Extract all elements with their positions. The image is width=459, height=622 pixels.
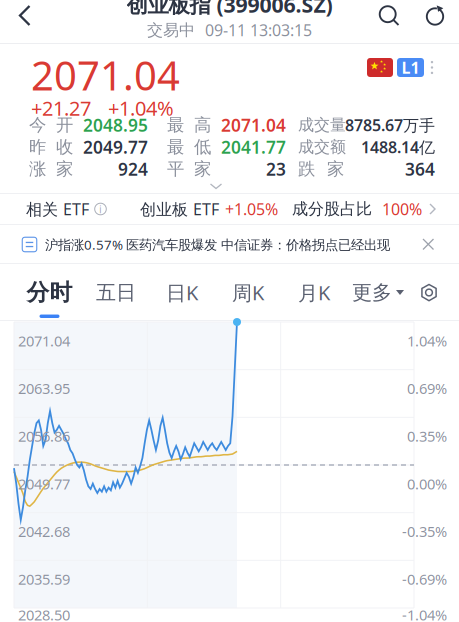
- staticText: 0.35%: [407, 426, 447, 446]
- staticText: 交易中: [147, 20, 195, 40]
- button[interactable]: Search: [367, 0, 411, 44]
- staticText: 2028.50: [18, 605, 70, 622]
- staticText: 最: [167, 114, 184, 136]
- staticText: 2035.59: [18, 569, 70, 589]
- staticText: 100%: [382, 198, 422, 220]
- button[interactable]: 日K: [149, 264, 215, 321]
- button[interactable]: 分时: [16, 264, 83, 321]
- staticText: 364: [405, 157, 435, 180]
- staticText: 最: [167, 136, 184, 158]
- staticText: 创业板指 (399006.SZ): [126, 0, 332, 18]
- button[interactable]: 相关 ETF: [0, 193, 459, 225]
- staticText: 2071.04: [221, 113, 286, 136]
- staticText: 分时: [26, 279, 72, 306]
- staticText: 沪指涨0.57% 医药汽车股爆发 中信证券：价格拐点已经出现: [45, 236, 390, 253]
- staticText: 2071.04: [18, 331, 70, 350]
- staticText: -1.04%: [402, 605, 447, 622]
- staticText: 开: [56, 114, 73, 136]
- staticText: i: [99, 202, 102, 216]
- staticText: 周K: [232, 279, 264, 306]
- button[interactable]: 沪指涨0.57% 医药汽车股爆发 中信证券：价格拐点已经出现: [0, 225, 459, 264]
- button[interactable]: 月K: [281, 264, 347, 321]
- staticText: 日K: [166, 279, 198, 306]
- staticText: 家: [194, 158, 211, 180]
- staticText: 高: [194, 114, 211, 136]
- button[interactable]: 五日: [83, 264, 149, 321]
- staticText: 924: [118, 157, 148, 180]
- staticText: +1.05%: [225, 198, 278, 220]
- staticText: 0.69%: [407, 379, 447, 398]
- staticText: 2049.77: [18, 474, 70, 493]
- staticText: 8785.67万手: [345, 114, 435, 136]
- staticText: 2048.95: [83, 113, 148, 136]
- staticText: 月K: [298, 279, 330, 306]
- staticText: -0.35%: [402, 522, 447, 541]
- staticText: 0.00%: [407, 474, 447, 493]
- staticText: 2063.95: [18, 379, 70, 398]
- staticText: 跌: [298, 158, 315, 180]
- staticText: 相关 ETF: [26, 198, 89, 220]
- staticText: 五日: [96, 280, 136, 305]
- staticText: 成分股占比: [292, 199, 372, 219]
- staticText: 成交额: [298, 137, 346, 157]
- staticText: 家: [56, 158, 73, 180]
- staticText: -0.69%: [402, 569, 447, 589]
- staticText: 创业板 ETF: [140, 198, 219, 220]
- staticText: 2071.04: [31, 48, 180, 101]
- staticText: L1: [401, 57, 419, 78]
- staticText: 更多: [352, 280, 392, 305]
- staticText: 09-11 13:03:15: [205, 19, 312, 41]
- staticText: 2049.77: [83, 135, 148, 158]
- staticText: 1.04%: [407, 331, 447, 350]
- staticText: 低: [194, 136, 211, 158]
- staticText: 收: [56, 136, 73, 158]
- button[interactable]: Chart settings: [409, 264, 449, 321]
- staticText: 家: [327, 158, 344, 180]
- button[interactable]: Refresh: [411, 0, 459, 44]
- staticText: 平: [167, 158, 184, 180]
- staticText: 成交量: [298, 115, 346, 135]
- button[interactable]: 周K: [215, 264, 281, 321]
- staticText: 涨: [29, 158, 46, 180]
- staticText: 1488.14亿: [361, 136, 435, 158]
- staticText: +21.27: [31, 95, 91, 121]
- staticText: 2041.77: [221, 135, 286, 158]
- staticText: 23: [266, 157, 286, 180]
- staticText: 15:00: [410, 617, 446, 622]
- staticText: 昨: [29, 136, 46, 158]
- staticText: 2042.68: [18, 522, 70, 541]
- staticText: 今: [29, 114, 46, 136]
- button[interactable]: 更多: [347, 264, 409, 321]
- staticText: 09:30: [14, 617, 50, 622]
- staticText: +1.04%: [108, 95, 174, 121]
- button[interactable]: Back: [0, 0, 50, 44]
- staticText: 2056.86: [18, 426, 70, 446]
